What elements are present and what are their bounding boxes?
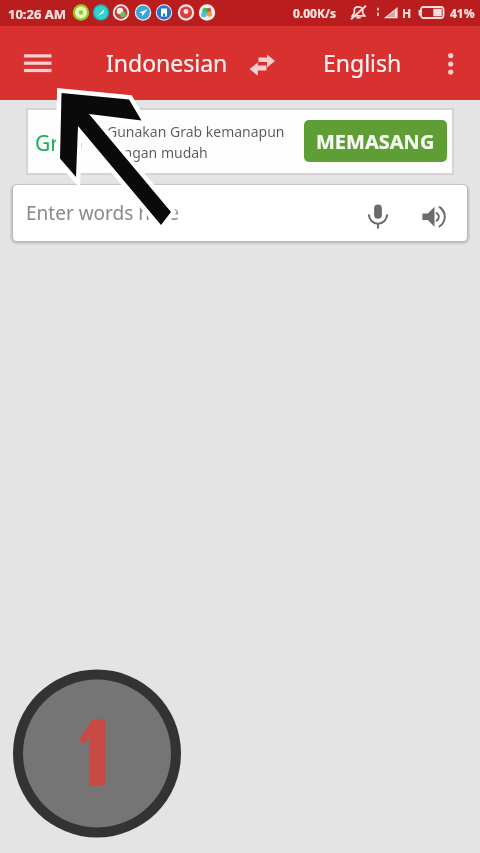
staticText: Grab bbox=[35, 129, 84, 157]
button[interactable]: MEMASANG bbox=[304, 120, 447, 162]
staticText: dengan mudah bbox=[107, 143, 208, 162]
button[interactable]: Swap languages bbox=[240, 42, 284, 86]
staticText: English bbox=[323, 47, 402, 78]
button[interactable]: Enter words here bbox=[13, 185, 467, 241]
button[interactable]: English bbox=[315, 41, 410, 84]
button[interactable]: More options bbox=[427, 40, 475, 88]
button[interactable]: Voice input bbox=[356, 194, 400, 238]
staticText: Indonesian bbox=[106, 47, 228, 78]
staticText: 41% bbox=[450, 5, 475, 21]
button[interactable]: Open navigation menu bbox=[14, 40, 62, 88]
button[interactable]: Speak bbox=[412, 196, 456, 240]
staticText: MEMASANG bbox=[316, 128, 435, 155]
staticText: 10:26 AM bbox=[8, 5, 67, 23]
button[interactable]: Step 1 bbox=[13, 670, 181, 838]
button[interactable]: Indonesian bbox=[98, 41, 236, 84]
staticText: H bbox=[402, 5, 412, 21]
button[interactable]: Grab bbox=[27, 109, 453, 174]
staticText: Gunakan Grab kemanapun bbox=[107, 122, 285, 141]
staticText: 0.00K/s bbox=[293, 5, 336, 21]
staticText: Enter words here bbox=[26, 200, 179, 226]
